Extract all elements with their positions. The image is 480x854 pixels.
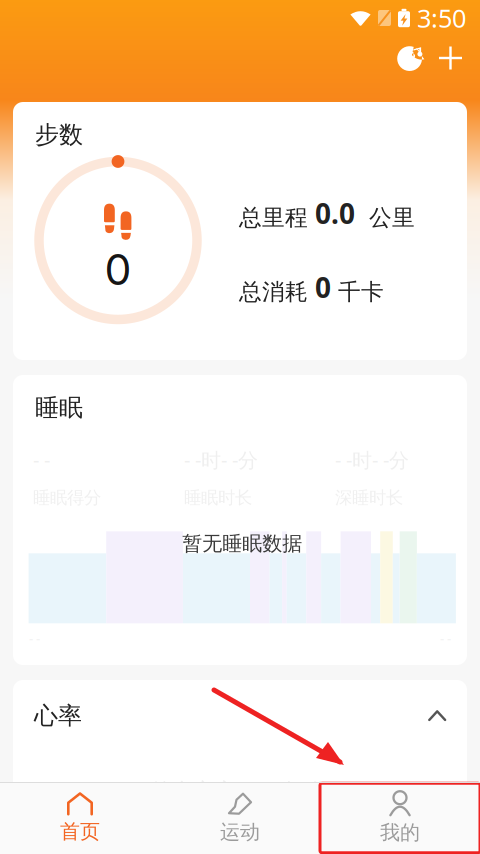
staticText: 0 [104, 244, 131, 295]
button[interactable]: 运动 [160, 784, 320, 852]
staticText: 0 [308, 269, 331, 306]
button[interactable]: Add [439, 46, 462, 69]
staticText: 运动 [220, 820, 260, 844]
staticText: 0.0 [308, 194, 355, 232]
staticText: 我的 [380, 820, 420, 845]
staticText: 公里 [355, 204, 415, 232]
staticText: 睡眠 [35, 393, 83, 422]
button[interactable]: Collapse heart rate [422, 704, 453, 728]
staticText: - - [235, 770, 272, 804]
staticText: 总消耗 [239, 278, 308, 306]
staticText: 总里程 [239, 204, 308, 232]
staticText: 首页 [60, 819, 100, 844]
staticText: - -时- -分 [335, 446, 409, 473]
staticText: 次/分 [272, 776, 328, 804]
staticText: 睡眠时长 [184, 487, 252, 508]
staticText: 3:50 [417, 1, 466, 35]
staticText: 步数 [35, 120, 83, 149]
staticText: - -时- -分 [184, 446, 258, 473]
staticText: 暂无睡眠数据 [182, 531, 302, 556]
button[interactable]: 首页 [0, 784, 160, 852]
staticText: 心率 [34, 701, 82, 730]
staticText: 静息心率 [151, 778, 235, 804]
button[interactable]: 我的 [320, 783, 480, 853]
staticText: 睡眠得分 [33, 487, 101, 508]
staticText: 深睡时长 [335, 487, 403, 508]
staticText: 千卡 [331, 278, 384, 306]
button[interactable]: Sleep sounds [397, 44, 423, 72]
